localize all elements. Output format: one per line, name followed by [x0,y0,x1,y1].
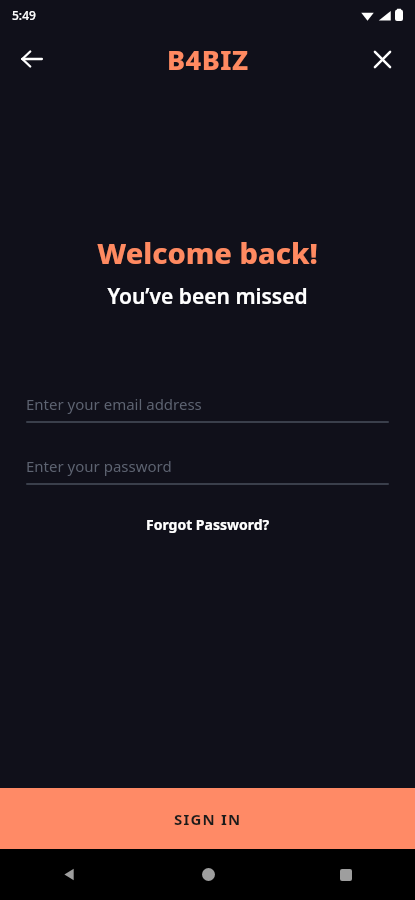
staticText: Welcome back! [0,233,415,272]
button[interactable]: Home [139,849,277,900]
staticText: Forgot Password? [146,515,270,534]
button[interactable]: Back [10,37,54,81]
staticText: SIGN IN [174,809,242,829]
button[interactable]: Forgot Password? [138,511,278,538]
staticText: 5:49 [12,7,36,23]
staticText: Enter your email address [26,394,202,414]
button[interactable]: Enter your email address [26,387,389,423]
button[interactable]: SIGN IN [0,788,415,849]
staticText: B4BIZ [167,41,249,78]
button[interactable]: Enter your password [26,449,389,485]
button[interactable]: Recent apps [277,849,415,900]
staticText: You’ve been missed [0,282,415,311]
staticText: Enter your password [26,456,172,476]
button[interactable]: Back [0,849,139,900]
button[interactable]: Close [361,38,403,80]
